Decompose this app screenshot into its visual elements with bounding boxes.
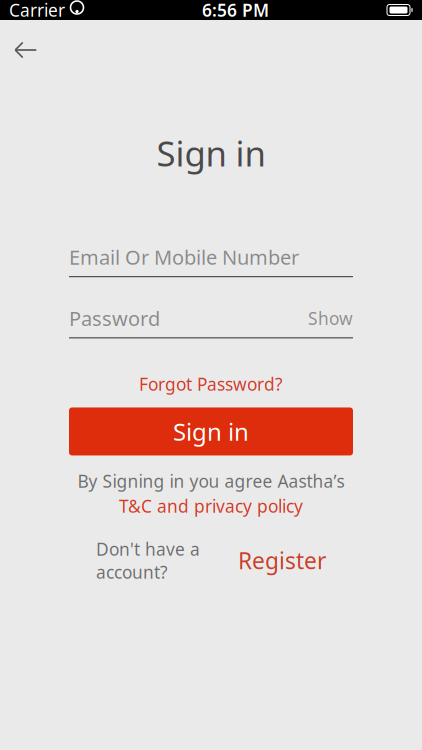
button[interactable]: Forgot Password? <box>129 366 293 401</box>
button[interactable]: Register <box>238 545 326 576</box>
staticText: T&C and privacy policy <box>119 494 303 517</box>
staticText: Sign in <box>156 130 265 176</box>
staticText: Register <box>238 545 326 576</box>
staticText: 6:56 PM <box>202 0 269 21</box>
button[interactable]: Sign in <box>69 407 353 455</box>
staticText: Sign in <box>173 415 249 447</box>
staticText: By Signing in you agree Aastha’s <box>77 469 344 492</box>
staticText: Forgot Password? <box>139 372 283 395</box>
button[interactable]: Show <box>308 307 353 330</box>
staticText: Show <box>308 307 353 330</box>
staticText: Carrier <box>9 0 65 21</box>
button[interactable]: T&C and privacy policy <box>119 494 303 517</box>
staticText: Email Or Mobile Number <box>69 244 299 270</box>
button[interactable]: Back <box>0 28 52 72</box>
staticText: Don't have a account? <box>96 537 200 583</box>
staticText: Password <box>69 305 160 332</box>
